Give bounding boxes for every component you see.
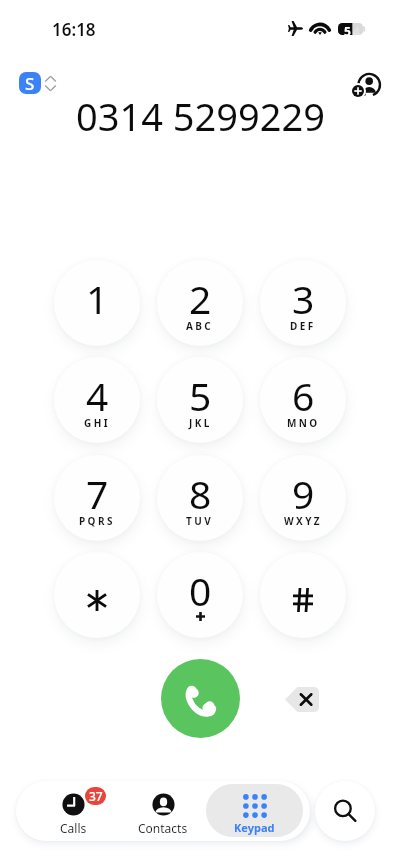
staticText: TUV [186, 514, 214, 528]
staticText: 4 [353, 23, 360, 35]
button[interactable]: Add contact [347, 66, 385, 104]
staticText: 16:18 [52, 18, 96, 41]
button[interactable]: 3 [260, 260, 346, 346]
button[interactable] [54, 552, 140, 638]
staticText: GHI [84, 416, 110, 430]
staticText: 7 [86, 467, 109, 520]
staticText: 0 [189, 564, 212, 617]
button[interactable]: Contacts [120, 781, 206, 841]
button[interactable]: 1 [54, 260, 140, 346]
staticText: Contacts [138, 820, 188, 836]
staticText: 3 [292, 272, 315, 325]
staticText: JKL [189, 416, 212, 430]
button[interactable]: Call [161, 659, 240, 738]
button[interactable]: 7 [54, 455, 140, 541]
staticText: 5 [189, 369, 212, 422]
button[interactable]: 4 [54, 357, 140, 443]
staticText: MNO [287, 416, 320, 430]
staticText: ABC [186, 319, 214, 333]
button[interactable]: 8 [157, 455, 243, 541]
staticText: WXYZ [284, 514, 323, 528]
staticText: 0314 5299229 [76, 90, 325, 140]
staticText: Keypad [234, 820, 275, 835]
button[interactable]: 6 [260, 357, 346, 443]
button[interactable]: Backspace [279, 676, 325, 722]
button[interactable] [260, 552, 346, 638]
staticText: 5 [344, 23, 351, 35]
staticText: PQRS [79, 514, 115, 528]
staticText: DEF [290, 319, 316, 333]
staticText: 2 [189, 272, 212, 325]
button[interactable]: Search [315, 781, 375, 841]
button[interactable]: 9 [260, 455, 346, 541]
staticText: 37 [89, 788, 103, 804]
button[interactable]: 37 [30, 781, 116, 841]
staticText: S [25, 72, 35, 94]
staticText: 9 [292, 467, 315, 520]
staticText: 4 [86, 369, 109, 422]
button[interactable]: S [19, 72, 56, 94]
staticText: 8 [189, 467, 212, 520]
button[interactable]: Keypad [206, 784, 303, 837]
staticText: Calls [60, 820, 87, 836]
button[interactable]: 2 [157, 260, 243, 346]
button[interactable]: 0 [157, 552, 243, 638]
staticText: 6 [292, 369, 315, 422]
staticText: 1 [86, 272, 109, 325]
button[interactable]: 5 [157, 357, 243, 443]
